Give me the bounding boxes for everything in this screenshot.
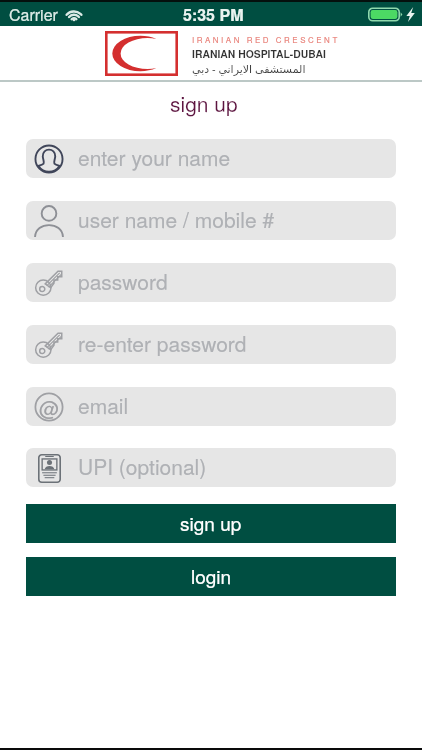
- staticText: re-enter password: [78, 328, 247, 358]
- staticText: sign up: [180, 509, 242, 536]
- staticText: @: [39, 393, 60, 422]
- staticText: 5:35 PM: [183, 3, 244, 26]
- button[interactable]: sign up: [26, 504, 396, 543]
- staticText: IRANIAN HOSPITAL-DUBAI: [192, 46, 326, 61]
- button[interactable]: @: [26, 387, 396, 426]
- button[interactable]: re-enter password: [26, 325, 396, 364]
- button[interactable]: UPI (optional): [26, 448, 396, 487]
- staticText: user name / mobile #: [78, 204, 275, 234]
- button[interactable]: user name / mobile #: [26, 201, 396, 240]
- staticText: password: [78, 266, 168, 296]
- staticText: enter your name: [78, 142, 231, 172]
- button[interactable]: password: [26, 263, 396, 302]
- staticText: login: [191, 562, 232, 589]
- staticText: sign up: [170, 88, 238, 118]
- staticText: IRANIAN RED CRESCENT: [192, 34, 340, 45]
- staticText: UPI (optional): [78, 451, 207, 481]
- staticText: المستشفى الايراني - دبي: [192, 61, 306, 76]
- button[interactable]: login: [26, 557, 396, 596]
- staticText: Carrier: [9, 3, 58, 26]
- staticText: email: [78, 390, 129, 420]
- button[interactable]: enter your name: [26, 139, 396, 178]
